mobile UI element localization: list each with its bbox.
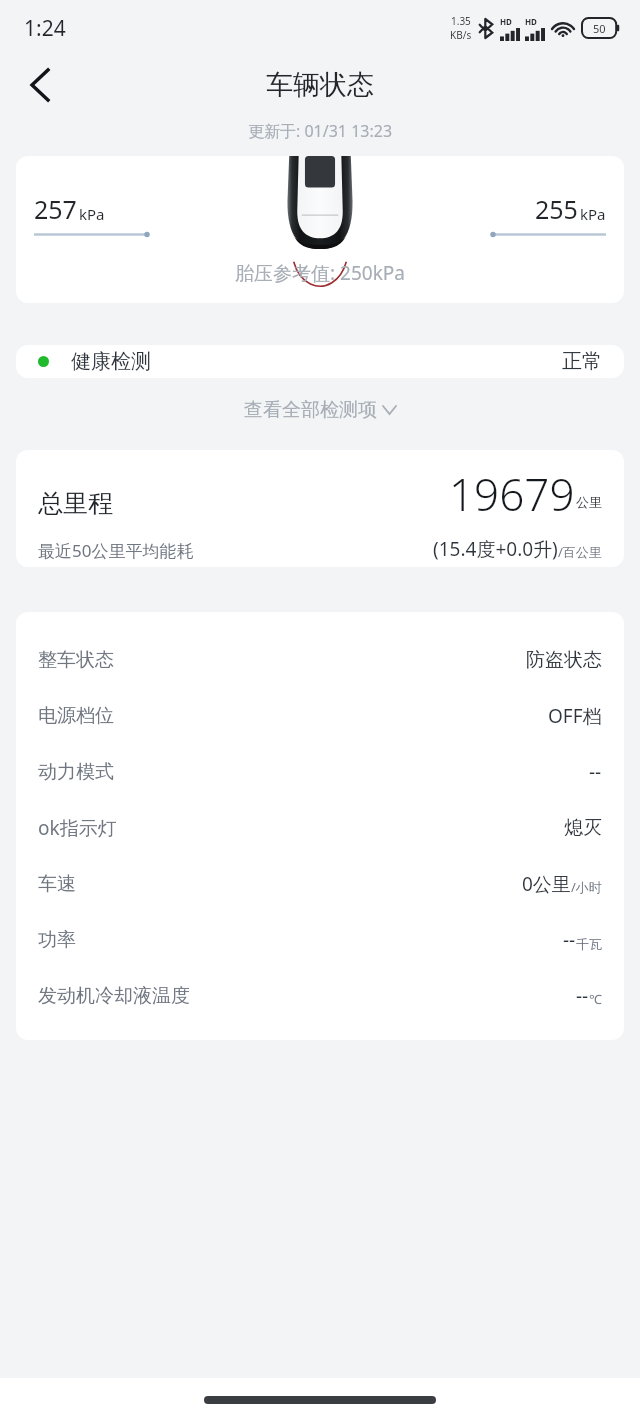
staticText: -- — [589, 759, 602, 785]
button[interactable]: 功率 — [38, 912, 602, 968]
staticText: 发动机冷却液温度 — [38, 984, 190, 1008]
staticText: 50 — [593, 21, 606, 36]
button[interactable]: 车速 — [38, 856, 602, 912]
staticText: 1:24 — [24, 14, 66, 43]
staticText: 动力模式 — [38, 760, 114, 784]
staticText: 功率 — [38, 928, 76, 952]
staticText: 防盗状态 — [526, 648, 602, 672]
staticText: 胎压参考值: 250kPa — [235, 260, 405, 286]
staticText: 电源档位 — [38, 704, 114, 728]
button[interactable]: 257 — [16, 156, 624, 303]
button[interactable]: 返回 — [12, 57, 68, 113]
staticText: HD — [525, 16, 537, 27]
staticText: 正常 — [562, 349, 602, 374]
staticText: HD — [500, 16, 512, 27]
button[interactable]: 发动机冷却液温度 — [38, 968, 602, 1024]
staticText: 查看全部检测项 — [244, 398, 377, 422]
staticText: 总里程 — [38, 488, 113, 519]
staticText: 最近50公里平均能耗 — [38, 539, 194, 562]
staticText: kPa — [580, 204, 606, 224]
staticText: 1.35 — [451, 14, 471, 28]
staticText: 车辆状态 — [266, 68, 374, 102]
staticText: (15.4度+0.0升) — [433, 536, 558, 562]
staticText: 19679 — [449, 464, 575, 524]
staticText: /百公里 — [558, 543, 602, 561]
staticText: KB/s — [450, 28, 472, 42]
staticText: 熄灭 — [564, 816, 602, 840]
button[interactable]: 健康检测 — [16, 345, 624, 378]
button[interactable]: 动力模式 — [38, 744, 602, 800]
staticText: 255 — [535, 192, 578, 226]
staticText: -- — [563, 927, 576, 953]
staticText: 整车状态 — [38, 648, 114, 672]
staticText: 更新于: 01/31 13:23 — [248, 120, 393, 142]
staticText: 公里 — [576, 494, 602, 510]
staticText: 257 — [34, 192, 77, 226]
staticText: 0公里 — [522, 871, 571, 897]
button[interactable]: 整车状态 — [38, 632, 602, 688]
staticText: 车速 — [38, 872, 76, 896]
button[interactable]: 电源档位 — [38, 688, 602, 744]
staticText: /小时 — [571, 878, 602, 896]
staticText: ℃ — [589, 990, 602, 1008]
button[interactable]: ok指示灯 — [38, 800, 602, 856]
button[interactable]: 查看全部检测项 — [232, 394, 408, 426]
staticText: 健康检测 — [71, 349, 151, 374]
staticText: ok指示灯 — [38, 815, 117, 841]
staticText: OFF档 — [548, 703, 602, 729]
staticText: 千瓦 — [576, 936, 602, 952]
button[interactable]: 总里程 — [16, 450, 624, 567]
staticText: kPa — [79, 204, 105, 224]
staticText: -- — [576, 983, 589, 1009]
